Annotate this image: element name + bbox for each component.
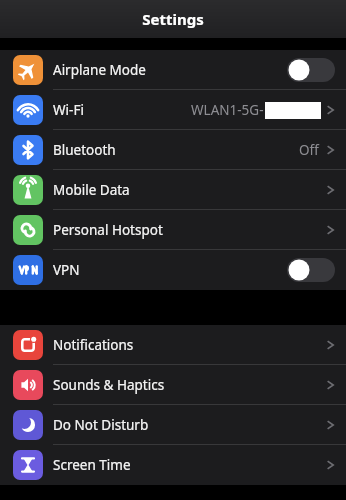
button[interactable]: Do Not Disturb <box>0 405 346 445</box>
button[interactable]: Screen Time <box>0 445 346 485</box>
staticText: Settings <box>142 9 204 29</box>
staticText: VPN <box>53 261 80 279</box>
staticText: Mobile Data <box>53 181 130 199</box>
staticText: Airplane Mode <box>53 61 146 79</box>
button[interactable]: Bluetooth <box>0 130 346 170</box>
button[interactable]: VPN <box>0 250 346 290</box>
button[interactable]: Mobile Data <box>0 170 346 210</box>
staticText: Do Not Disturb <box>53 416 149 434</box>
staticText: WLAN1-5G- <box>191 101 264 119</box>
button[interactable]: Notifications <box>0 325 346 365</box>
button[interactable]: Personal Hotspot <box>0 210 346 250</box>
staticText: Off <box>299 141 319 159</box>
button[interactable]: Airplane Mode <box>0 50 346 90</box>
staticText: Sounds & Haptics <box>53 376 165 394</box>
staticText: Wi-Fi <box>53 101 84 119</box>
staticText: Notifications <box>53 336 134 354</box>
staticText: Screen Time <box>53 456 131 474</box>
button[interactable]: Sounds & Haptics <box>0 365 346 405</box>
staticText: Personal Hotspot <box>53 221 163 239</box>
staticText: Bluetooth <box>53 141 116 159</box>
button[interactable]: Wi-Fi <box>0 90 346 130</box>
